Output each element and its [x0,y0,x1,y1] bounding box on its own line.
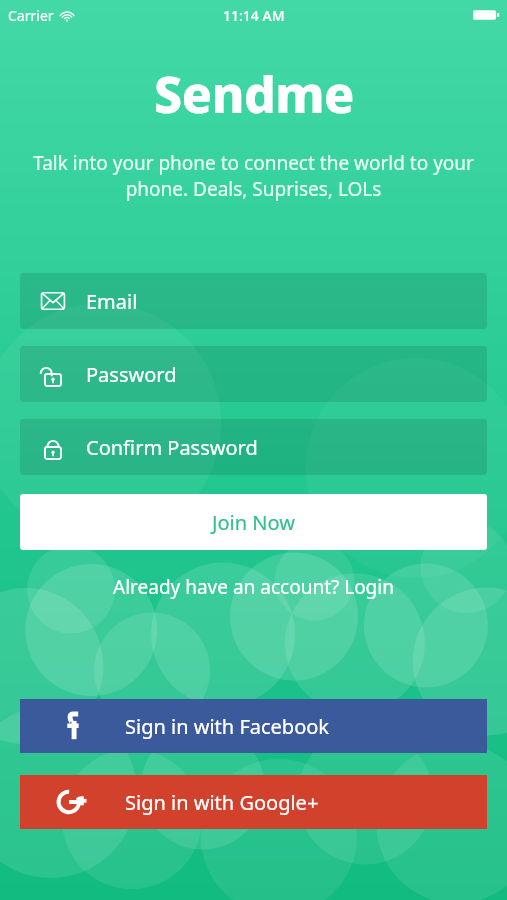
staticText: Join Now [212,509,295,536]
staticText: 11:14 AM [223,6,285,25]
button[interactable]: Already have an account? Login [0,568,507,606]
staticText: Email [86,288,138,315]
staticText: Already have an account? Login [113,574,394,600]
button[interactable]: Confirm Password [20,419,487,475]
staticText: Password [86,361,177,388]
staticText: Confirm Password [86,434,258,461]
staticText: Carrier [8,6,54,25]
staticText: Sign in with Google+ [125,789,319,816]
button[interactable]: Password [20,346,487,402]
button[interactable]: Join Now [20,494,487,550]
staticText: Talk into your phone to connect the worl… [30,150,477,201]
button[interactable]: Sign in with Google+ [20,775,487,829]
button[interactable]: Email [20,273,487,329]
staticText: Sign in with Facebook [125,713,330,740]
button[interactable]: Sign in with Facebook [20,699,487,753]
staticText: Sendme [154,60,354,128]
